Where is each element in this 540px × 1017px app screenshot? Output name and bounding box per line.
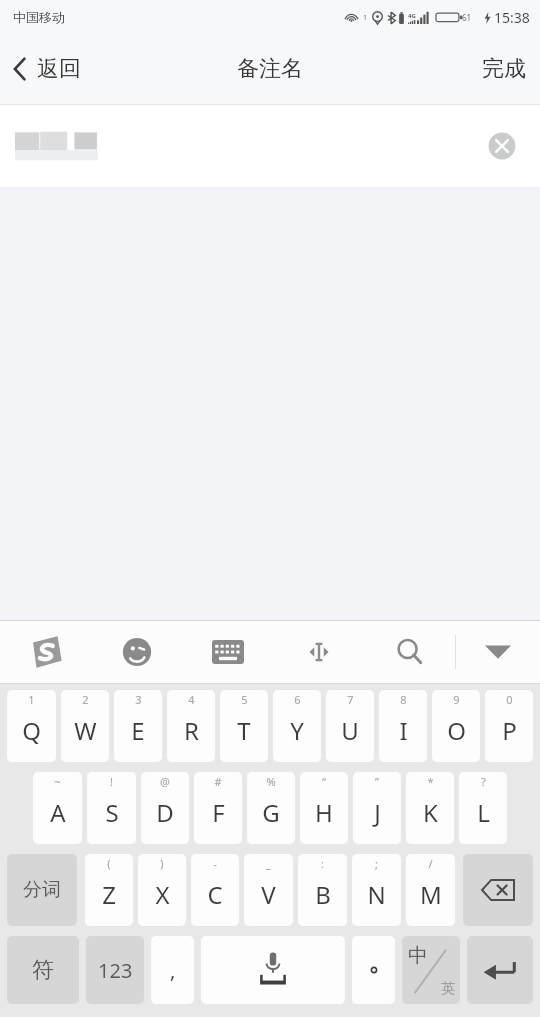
button[interactable]: ? xyxy=(459,772,507,844)
staticText: F xyxy=(212,796,225,829)
button[interactable]: @ xyxy=(141,772,189,844)
button[interactable]: Keyboard layout xyxy=(182,621,273,683)
button[interactable]: * xyxy=(406,772,454,844)
staticText: N xyxy=(367,878,386,911)
staticText: P xyxy=(502,714,517,747)
button[interactable]: # xyxy=(194,772,242,844)
staticText: , xyxy=(170,957,176,984)
staticText: M xyxy=(420,878,442,911)
staticText: 中 xyxy=(408,943,428,968)
staticText: 4 xyxy=(188,692,195,707)
staticText: 7 xyxy=(347,692,354,707)
staticText: ” xyxy=(375,774,379,789)
staticText: 英 xyxy=(441,980,455,998)
button[interactable]: ) xyxy=(138,854,186,926)
staticText: U xyxy=(341,714,359,747)
staticText: 分词 xyxy=(23,878,61,902)
button[interactable]: Space, voice input xyxy=(201,936,345,1004)
button[interactable]: 中 xyxy=(402,936,460,1004)
button[interactable]: 3 xyxy=(114,690,162,762)
button[interactable]: 9 xyxy=(432,690,480,762)
button[interactable]: Enter xyxy=(467,936,533,1004)
staticText: ~ xyxy=(54,774,61,789)
button[interactable]: 符 xyxy=(7,936,79,1004)
button[interactable] xyxy=(352,936,395,1004)
staticText: T xyxy=(237,714,251,747)
staticText: L xyxy=(477,796,490,829)
button[interactable]: Backspace xyxy=(463,854,533,926)
button[interactable]: - xyxy=(191,854,239,926)
staticText: / xyxy=(428,856,433,871)
staticText: : xyxy=(321,856,324,871)
staticText: % xyxy=(266,774,276,789)
staticText: X xyxy=(155,878,170,911)
button[interactable]: % xyxy=(247,772,295,844)
staticText: - xyxy=(213,856,217,871)
staticText: Z xyxy=(102,878,116,911)
staticText: “ xyxy=(322,774,326,789)
staticText: A xyxy=(50,796,66,829)
button[interactable]: 返回 xyxy=(0,45,97,93)
button[interactable]: Hide keyboard xyxy=(456,621,540,683)
button[interactable]: 6 xyxy=(273,690,321,762)
staticText: D xyxy=(156,796,174,829)
staticText: 4G xyxy=(408,12,416,20)
button[interactable]: 分词 xyxy=(7,854,77,926)
staticText: 符 xyxy=(32,956,54,984)
button[interactable]: Search xyxy=(364,621,455,683)
button[interactable]: ! xyxy=(87,772,136,844)
staticText: H xyxy=(315,796,333,829)
button[interactable]: 4 xyxy=(167,690,215,762)
button[interactable]: / xyxy=(406,854,455,926)
button[interactable]: 8 xyxy=(379,690,427,762)
staticText: ? xyxy=(481,774,486,789)
staticText: 8 xyxy=(400,692,407,707)
button[interactable]: 0 xyxy=(485,690,533,762)
button[interactable]: 1 xyxy=(7,690,56,762)
staticText: V xyxy=(261,878,276,911)
staticText: 1 xyxy=(28,692,35,707)
staticText: * xyxy=(427,774,434,789)
button[interactable]: 5 xyxy=(220,690,268,762)
button[interactable]: Sogou input menu xyxy=(0,621,91,683)
staticText: ( xyxy=(107,856,111,871)
button[interactable]: 7 xyxy=(326,690,374,762)
button[interactable]: ” xyxy=(353,772,401,844)
staticText: # xyxy=(214,774,222,789)
button[interactable]: 完成 xyxy=(464,45,540,93)
staticText: 3 xyxy=(135,692,142,707)
staticText: 61 xyxy=(462,12,472,23)
staticText: 1 xyxy=(363,13,368,23)
button[interactable]: _ xyxy=(244,854,293,926)
button[interactable]: ( xyxy=(85,854,133,926)
staticText: R xyxy=(184,714,199,747)
staticText: 5 xyxy=(241,692,248,707)
button[interactable]: 2 xyxy=(61,690,109,762)
staticText: @ xyxy=(160,774,170,789)
button[interactable]: Clear text xyxy=(487,131,517,161)
staticText: ! xyxy=(110,774,113,789)
staticText: C xyxy=(207,878,223,911)
staticText: 15:38 xyxy=(494,8,530,27)
staticText: 备注名 xyxy=(237,55,303,83)
staticText: K xyxy=(423,796,438,829)
staticText: W xyxy=(74,714,97,747)
button[interactable]: , xyxy=(151,936,194,1004)
button[interactable]: Move cursor xyxy=(273,621,364,683)
staticText: I xyxy=(399,714,408,747)
staticText: G xyxy=(262,796,280,829)
button[interactable]: Emoji xyxy=(91,621,182,683)
button[interactable]: ~ xyxy=(33,772,82,844)
button[interactable]: 123 xyxy=(86,936,144,1004)
staticText: Q xyxy=(22,714,41,747)
staticText: ) xyxy=(160,856,164,871)
button[interactable]: ; xyxy=(352,854,401,926)
staticText: 返回 xyxy=(37,55,81,83)
staticText: B xyxy=(315,878,331,911)
staticText: S xyxy=(105,796,119,829)
button[interactable]: : xyxy=(298,854,347,926)
button[interactable]: “ xyxy=(300,772,348,844)
staticText: 9 xyxy=(453,692,460,707)
staticText: 完成 xyxy=(482,55,526,83)
staticText: _ xyxy=(266,856,271,871)
